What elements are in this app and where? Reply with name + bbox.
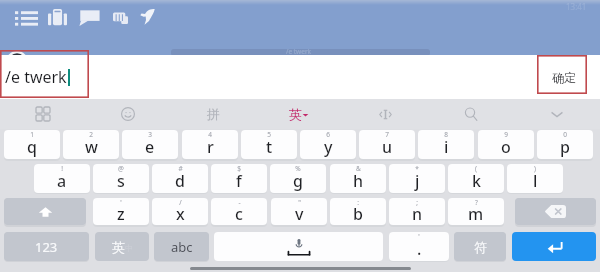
button[interactable]: ( xyxy=(448,164,504,193)
staticText: 8 xyxy=(444,130,448,139)
staticText: q xyxy=(27,136,37,158)
staticText: # xyxy=(178,164,183,173)
staticText: / xyxy=(179,198,182,207)
button[interactable]: & xyxy=(330,164,386,193)
button[interactable]: 4 xyxy=(182,130,238,159)
staticText: ? xyxy=(475,198,478,207)
staticText: /e twerk xyxy=(286,47,312,56)
staticText: w xyxy=(85,136,98,158)
staticText: 英 xyxy=(289,106,302,122)
button[interactable]: : xyxy=(330,198,386,225)
button[interactable]: Emoji xyxy=(85,99,170,129)
button[interactable]: 3 xyxy=(122,130,178,159)
staticText: f xyxy=(236,170,242,192)
staticText: c xyxy=(235,203,243,225)
staticText: s xyxy=(117,170,125,192)
button[interactable]: Backspace xyxy=(515,198,596,225)
staticText: g xyxy=(293,170,303,192)
button[interactable]: @ xyxy=(93,164,149,193)
button[interactable]: Poke xyxy=(110,7,131,27)
staticText: 符 xyxy=(474,239,487,255)
staticText: z xyxy=(117,203,125,225)
staticText: ' xyxy=(418,232,420,241)
button[interactable]: - xyxy=(211,198,267,225)
button[interactable]: Hide keyboard xyxy=(514,99,600,129)
staticText: /e twerk xyxy=(5,66,67,88)
staticText: e xyxy=(145,136,155,158)
staticText: . xyxy=(417,238,422,260)
button[interactable]: ; xyxy=(389,198,445,225)
button[interactable]: Keyboard layouts xyxy=(0,99,85,129)
staticText: " xyxy=(298,198,301,207)
button[interactable]: # xyxy=(152,164,208,193)
staticText: @ xyxy=(118,164,124,173)
button[interactable]: ' xyxy=(93,198,149,225)
staticText: p xyxy=(560,136,570,158)
staticText: t xyxy=(266,136,273,158)
button[interactable]: 英 xyxy=(95,232,149,261)
staticText: * xyxy=(415,164,419,173)
button[interactable]: 9 xyxy=(478,130,534,159)
staticText: 9 xyxy=(504,130,508,139)
staticText: b xyxy=(353,203,363,225)
staticText: ( xyxy=(475,164,477,173)
button[interactable]: Menu xyxy=(12,6,41,28)
button[interactable]: Space xyxy=(214,232,383,261)
button[interactable]: Move cursor xyxy=(342,99,428,129)
staticText: 4 xyxy=(208,130,212,139)
button[interactable]: ' xyxy=(389,232,449,261)
button[interactable]: 7 xyxy=(359,130,415,159)
staticText: 6 xyxy=(326,130,330,139)
button[interactable]: * xyxy=(389,164,445,193)
button[interactable]: Messages xyxy=(76,6,103,29)
button[interactable]: 2 xyxy=(63,130,119,159)
staticText: y xyxy=(324,136,333,158)
staticText: 0 xyxy=(563,130,567,139)
button[interactable]: 123 xyxy=(4,232,89,261)
staticText: 英 xyxy=(112,239,125,255)
button[interactable]: / xyxy=(152,198,208,225)
button[interactable]: Language English xyxy=(256,99,342,129)
staticText: ; xyxy=(416,198,418,207)
button[interactable]: 符 xyxy=(454,232,506,261)
staticText: k xyxy=(472,170,481,192)
staticText: abc xyxy=(171,238,193,256)
staticText: 2 xyxy=(89,130,93,139)
button[interactable]: 5 xyxy=(241,130,297,159)
staticText: h xyxy=(353,170,364,192)
button[interactable]: " xyxy=(271,198,327,225)
staticText: r xyxy=(207,136,214,158)
button[interactable]: 8 xyxy=(418,130,474,159)
button[interactable]: 0 xyxy=(537,130,593,159)
staticText: u xyxy=(382,136,393,158)
button[interactable]: abc xyxy=(154,232,209,261)
staticText: % xyxy=(295,164,301,173)
staticText: 3 xyxy=(148,130,152,139)
button[interactable]: Bird xyxy=(137,5,158,28)
button[interactable]: 确定 xyxy=(538,55,590,99)
staticText: v xyxy=(295,203,304,225)
button[interactable]: Shift xyxy=(4,198,86,225)
button[interactable]: % xyxy=(270,164,326,193)
button[interactable]: Enter xyxy=(512,232,596,261)
button[interactable]: ! xyxy=(34,164,90,193)
staticText: - xyxy=(238,198,241,207)
button[interactable]: ) xyxy=(507,164,563,193)
button[interactable]: 1 xyxy=(4,130,60,159)
staticText: & xyxy=(356,164,361,173)
button[interactable]: Briefcase xyxy=(45,5,70,29)
staticText: 123 xyxy=(35,238,58,256)
staticText: ' xyxy=(120,198,122,207)
button[interactable]: $ xyxy=(211,164,267,193)
staticText: 拼 xyxy=(207,106,220,122)
button[interactable]: Search xyxy=(428,99,514,129)
button[interactable]: Pinyin xyxy=(170,99,256,129)
staticText: j xyxy=(415,170,420,192)
staticText: 13:41 xyxy=(566,1,587,12)
button[interactable]: ? xyxy=(448,198,504,225)
button[interactable]: 6 xyxy=(300,130,356,159)
staticText: ) xyxy=(534,164,536,173)
staticText: l xyxy=(533,170,538,192)
staticText: 5 xyxy=(267,130,271,139)
